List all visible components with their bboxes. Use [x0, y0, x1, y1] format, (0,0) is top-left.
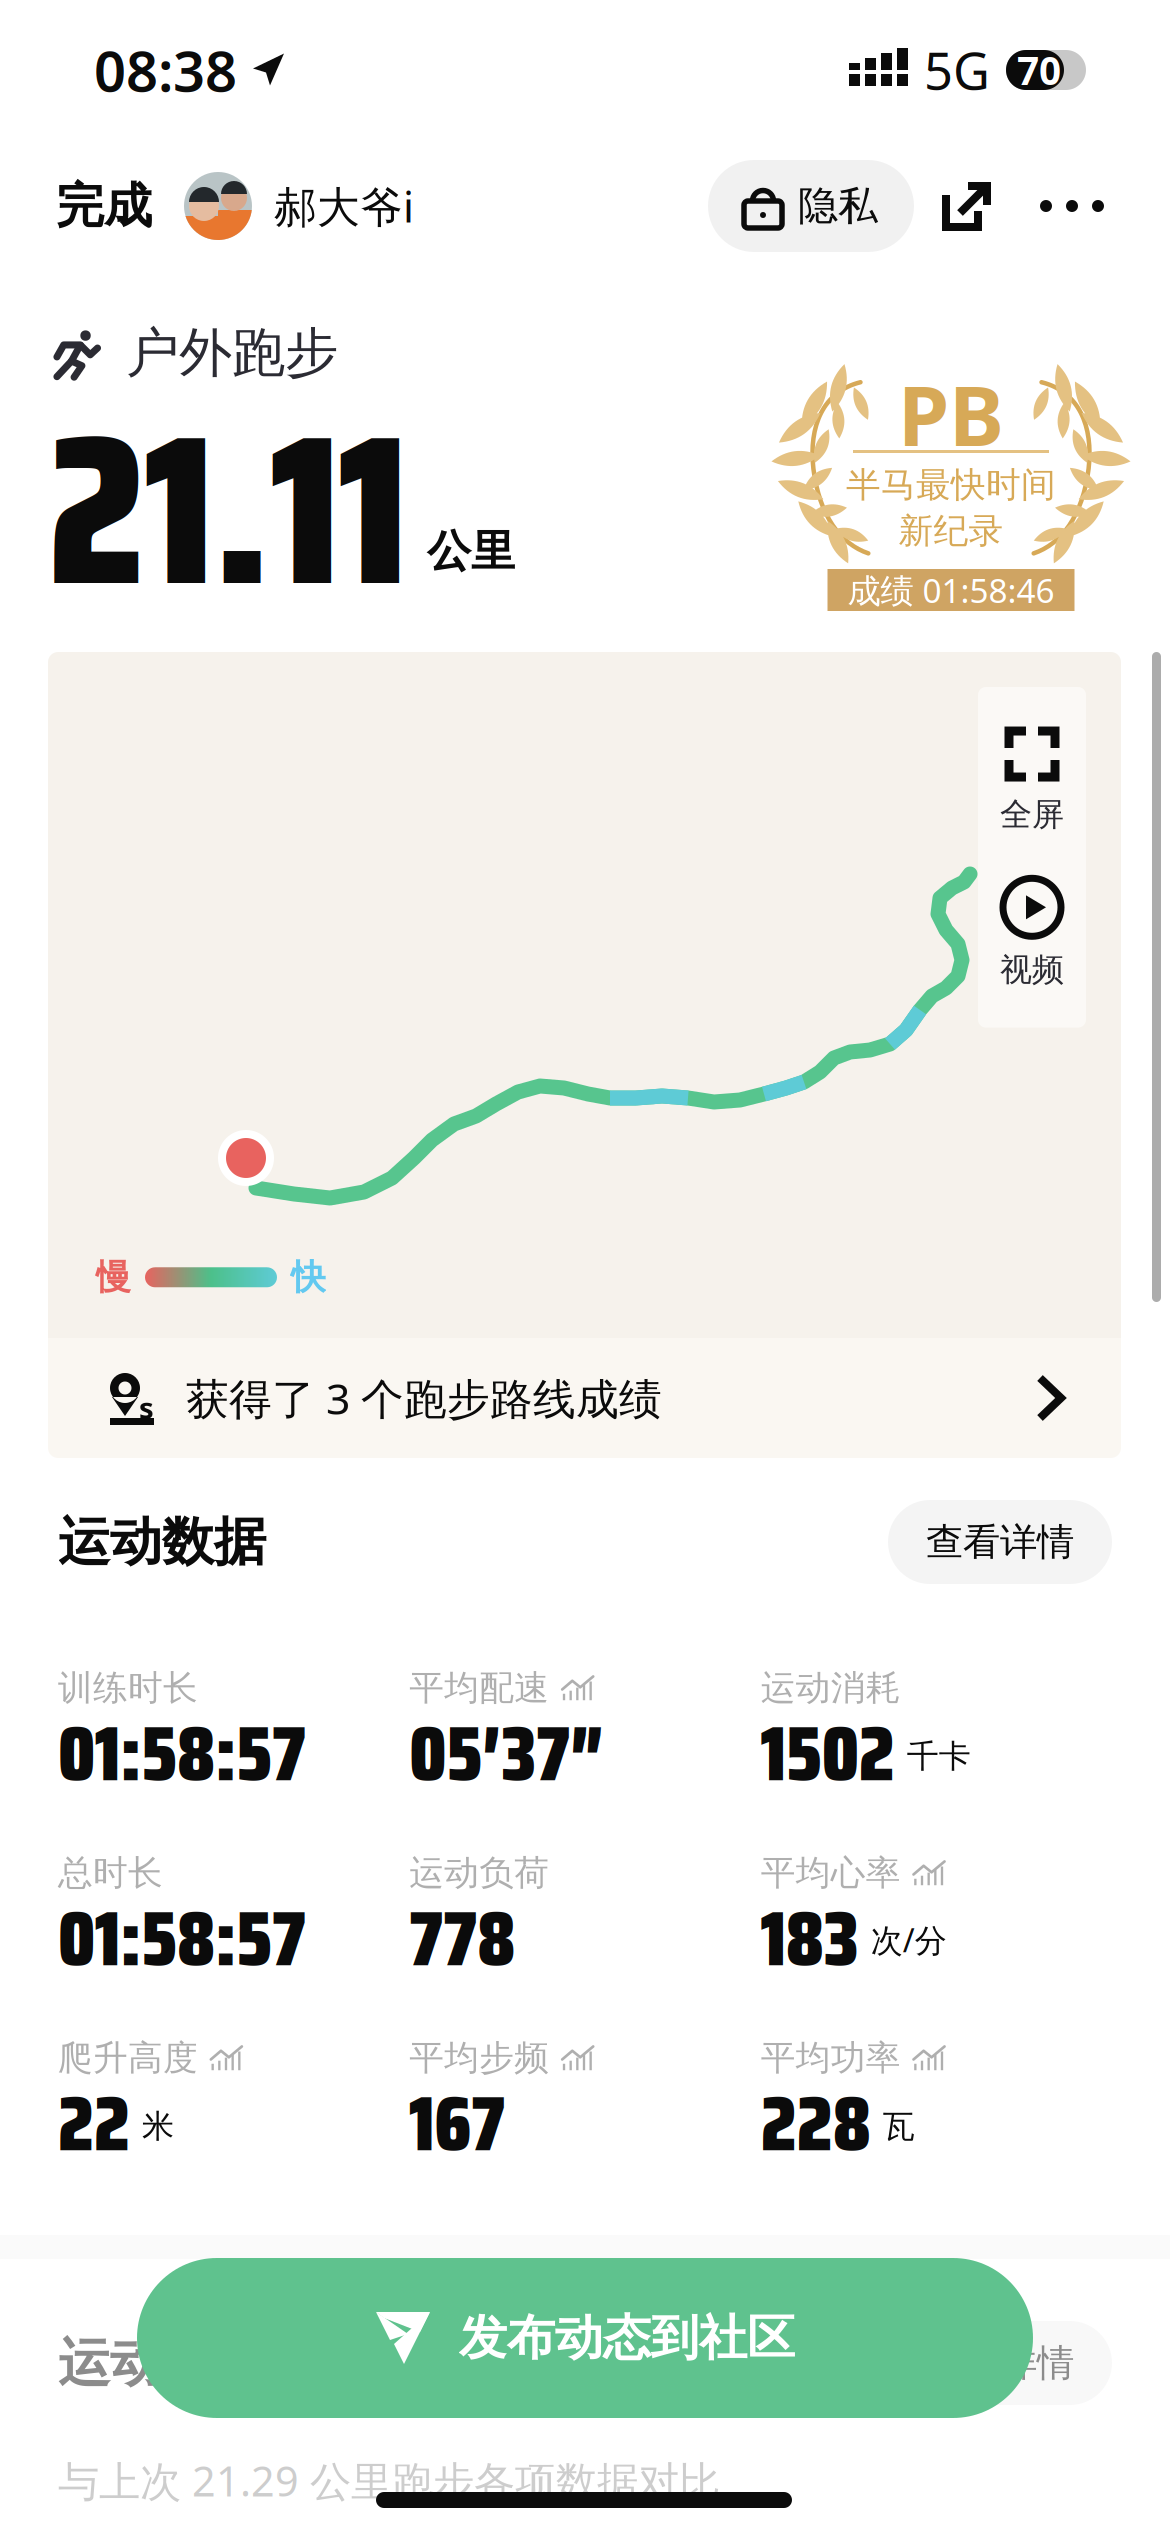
staticText: 瓦	[883, 2107, 915, 2146]
staticText: 查看详情	[926, 1519, 1074, 1565]
button[interactable]: 全屏	[978, 687, 1086, 834]
staticText: 平均步频	[409, 2037, 549, 2079]
staticText: 新纪录	[898, 510, 1003, 552]
staticText: 米	[142, 2107, 174, 2146]
staticText: PB	[898, 359, 1004, 469]
staticText: 778	[409, 1877, 515, 1999]
staticText: 183	[761, 1877, 859, 1999]
staticText: 户外跑步	[126, 320, 338, 386]
staticText: 发布动态到社区	[459, 2308, 795, 2367]
staticText: 查看详情	[926, 2340, 1074, 2386]
button[interactable]: 更多	[1018, 160, 1126, 252]
button[interactable]: 发布动态到社区	[137, 2258, 1033, 2418]
staticText: 5G	[924, 36, 990, 104]
staticText: 01:58:57	[58, 1877, 306, 1999]
staticText: 平均配速	[409, 1667, 549, 1709]
staticText: 运动负荷	[409, 1852, 549, 1894]
staticText: 平均功率	[761, 2037, 901, 2079]
staticText: 运动对比	[58, 2331, 266, 2395]
staticText: 视频	[1000, 950, 1064, 990]
staticText: 郝大爷i	[274, 178, 414, 234]
staticText: 获得了 3 个跑步路线成绩	[186, 1370, 662, 1426]
staticText: 228	[761, 2062, 871, 2184]
staticText: 公里	[427, 524, 515, 578]
staticText: 全屏	[1000, 795, 1064, 834]
button[interactable]: 查看详情	[888, 2321, 1112, 2405]
staticText: 167	[409, 2062, 505, 2184]
staticText: 与上次 21.29 公里跑步各项数据对比	[58, 2453, 720, 2508]
staticText: 运动数据	[58, 1510, 266, 1574]
button[interactable]: 郝大爷i	[152, 172, 414, 240]
button[interactable]: 分享	[914, 160, 1018, 252]
staticText: 爬升高度	[58, 2037, 198, 2079]
button[interactable]: 隐私	[708, 160, 914, 252]
staticText: 05′37″	[409, 1692, 604, 1814]
staticText: 成绩 01:58:46	[847, 568, 1054, 612]
staticText: 70	[1017, 44, 1061, 96]
staticText: 01:58:57	[58, 1692, 306, 1814]
button[interactable]: 视频	[978, 834, 1086, 1028]
staticText: 平均心率	[761, 1852, 901, 1894]
staticText: 快	[291, 1256, 326, 1299]
staticText: 半马最快时间	[846, 464, 1056, 506]
staticText: 千卡	[907, 1737, 971, 1776]
button[interactable]: 完成	[0, 164, 152, 247]
staticText: 1502	[761, 1692, 895, 1814]
staticText: 慢	[96, 1256, 131, 1299]
staticText: 完成	[56, 176, 152, 235]
staticText: 21.11	[48, 345, 407, 675]
staticText: 总时长	[58, 1852, 163, 1894]
staticText: s	[139, 1388, 154, 1427]
staticText: 22	[58, 2062, 130, 2184]
button[interactable]: 查看详情	[888, 1500, 1112, 1584]
staticText: 隐私	[798, 181, 878, 230]
staticText: 次/分	[871, 1918, 947, 1961]
staticText: 训练时长	[58, 1667, 198, 1709]
button[interactable]: s	[48, 1338, 1121, 1458]
staticText: 运动消耗	[761, 1667, 901, 1709]
staticText: 08:38	[94, 33, 237, 107]
